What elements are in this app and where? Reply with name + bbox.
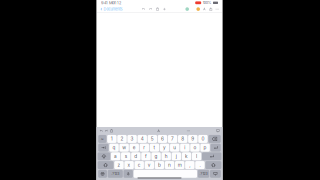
- button[interactable]: Undo: [142, 7, 145, 11]
- button[interactable]: f: [141, 152, 151, 160]
- staticText: x: [128, 162, 131, 168]
- button[interactable]: Documents: [100, 7, 122, 11]
- button[interactable]: Hide Keyboard: [210, 170, 221, 178]
- button[interactable]: More: [187, 129, 190, 133]
- button[interactable]: n: [165, 161, 174, 169]
- staticText: 9:41 Mon 12: [101, 0, 121, 5]
- button[interactable]: .: [195, 161, 205, 169]
- button[interactable]: 4: [137, 135, 147, 143]
- button[interactable]: v: [145, 161, 154, 169]
- button[interactable]: y: [160, 144, 169, 152]
- staticText: k: [185, 153, 188, 159]
- button[interactable]: Return: [210, 144, 221, 152]
- button[interactable]: Share Document: [196, 7, 200, 11]
- button[interactable]: t: [150, 144, 159, 152]
- staticText: Documents: [103, 7, 122, 11]
- staticText: 1: [111, 136, 113, 142]
- staticText: ,: [189, 162, 190, 168]
- staticText: .: [199, 162, 200, 168]
- staticText: i: [184, 145, 185, 150]
- button[interactable]: z: [114, 161, 124, 169]
- button[interactable]: Paste: [110, 129, 113, 133]
- button[interactable]: d: [131, 152, 141, 160]
- staticText: 9: [191, 136, 194, 142]
- button[interactable]: More: [215, 7, 219, 11]
- button[interactable]: ,: [185, 161, 194, 169]
- button[interactable]: e: [129, 144, 139, 152]
- button[interactable]: a: [111, 152, 120, 160]
- button[interactable]: Shift: [205, 161, 221, 169]
- button[interactable]: q: [109, 144, 119, 152]
- button[interactable]: Caps Lock: [98, 152, 110, 160]
- staticText: 7: [171, 136, 174, 142]
- staticText: a: [114, 153, 117, 159]
- staticText: 0: [201, 136, 204, 142]
- button[interactable]: o: [190, 144, 200, 152]
- staticText: y: [163, 145, 166, 150]
- button[interactable]: 1: [107, 135, 117, 143]
- button[interactable]: w: [119, 144, 129, 152]
- staticText: q: [112, 145, 115, 150]
- staticText: 5: [151, 136, 154, 142]
- button[interactable]: .?123: [108, 170, 123, 178]
- button[interactable]: 8: [178, 135, 187, 143]
- button[interactable]: ~: [98, 135, 106, 143]
- button[interactable]: 7: [168, 135, 177, 143]
- staticText: l: [196, 153, 197, 159]
- button[interactable]: Dictate: [123, 170, 133, 178]
- button[interactable]: Collaborate: [185, 7, 189, 11]
- button[interactable]: r: [140, 144, 149, 152]
- staticText: u: [173, 145, 176, 150]
- button[interactable]: Tab: [98, 144, 109, 152]
- button[interactable]: u: [170, 144, 179, 152]
- button[interactable]: l: [192, 152, 201, 160]
- button[interactable]: Next Keyboard: [98, 170, 107, 178]
- staticText: z: [117, 162, 120, 168]
- staticText: w: [122, 145, 126, 150]
- staticText: j: [176, 153, 177, 159]
- button[interactable]: Insert: [156, 7, 159, 11]
- button[interactable]: m: [175, 161, 184, 169]
- button[interactable]: k: [182, 152, 191, 160]
- button[interactable]: Return: [202, 152, 221, 160]
- button[interactable]: 5: [148, 135, 157, 143]
- staticText: 2: [120, 136, 123, 142]
- button[interactable]: Redo: [105, 129, 108, 133]
- button[interactable]: 6: [158, 135, 167, 143]
- staticText: 8: [181, 136, 184, 142]
- button[interactable]: p: [200, 144, 210, 152]
- button[interactable]: Hide Keyboard: [216, 129, 220, 133]
- button[interactable]: i: [180, 144, 190, 152]
- button[interactable]: Undo: [99, 129, 103, 133]
- staticText: s: [125, 153, 127, 159]
- button[interactable]: x: [124, 161, 134, 169]
- button[interactable]: Text Format: [157, 129, 161, 133]
- button[interactable]: b: [155, 161, 164, 169]
- button[interactable]: 2: [117, 135, 127, 143]
- staticText: f: [145, 153, 147, 159]
- button[interactable]: Share: [209, 7, 212, 11]
- button[interactable]: Shift: [98, 161, 113, 169]
- staticText: r: [143, 145, 145, 150]
- button[interactable]: Add: [163, 7, 166, 11]
- button[interactable]: c: [134, 161, 144, 169]
- staticText: d: [134, 153, 137, 159]
- button[interactable]: .?123: [198, 170, 209, 178]
- button[interactable]: Delete: [208, 135, 221, 143]
- button[interactable]: 0: [198, 135, 208, 143]
- button[interactable]: 9: [188, 135, 197, 143]
- button[interactable]: h: [161, 152, 171, 160]
- button[interactable]: Redo: [149, 7, 152, 11]
- button[interactable]: s: [121, 152, 130, 160]
- button[interactable]: Space: [134, 170, 197, 178]
- button[interactable]: j: [172, 152, 181, 160]
- staticText: 3: [131, 136, 134, 142]
- button[interactable]: Format: [203, 7, 206, 11]
- button[interactable]: 3: [127, 135, 137, 143]
- button[interactable]: g: [151, 152, 161, 160]
- staticText: .?123: [111, 172, 119, 176]
- staticText: t: [153, 145, 155, 150]
- staticText: v: [148, 162, 151, 168]
- staticText: o: [193, 145, 196, 150]
- staticText: .?123: [199, 172, 207, 176]
